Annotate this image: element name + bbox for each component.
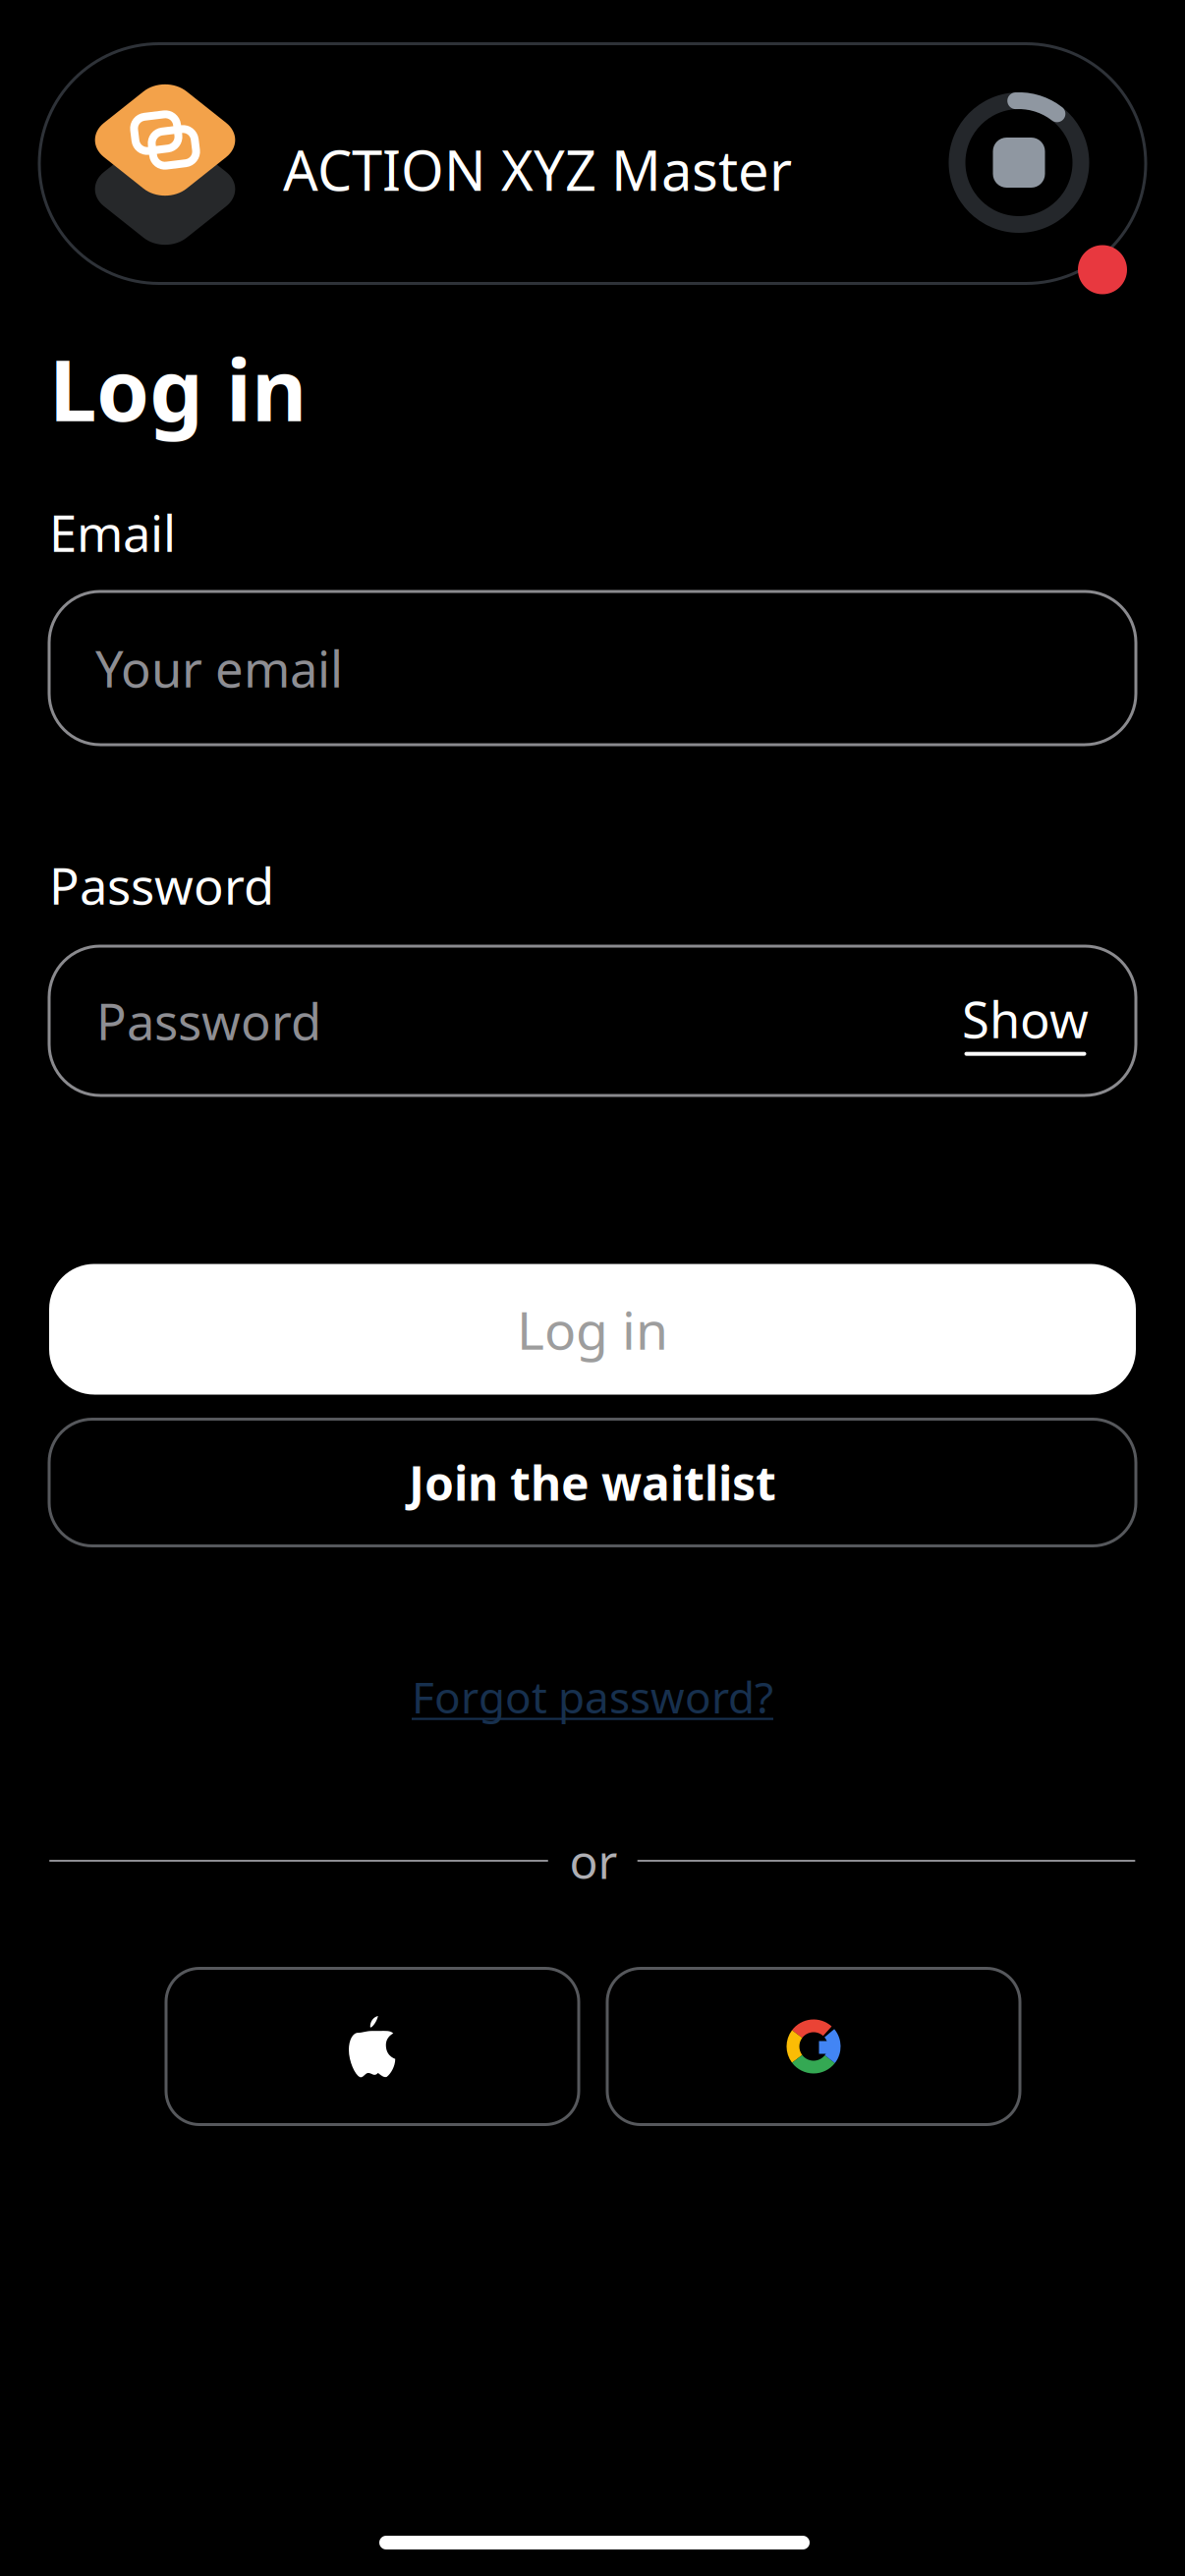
button[interactable]: Password, Show: [49, 946, 1136, 1095]
staticText: or: [569, 1829, 618, 1892]
button[interactable]: ACTION XYZ Master recording: [39, 44, 1146, 283]
staticText: ACTION XYZ Master: [283, 133, 792, 206]
staticText: Email: [49, 499, 176, 566]
staticText: Password: [96, 988, 321, 1054]
button[interactable]: Log in: [49, 1264, 1136, 1395]
button[interactable]: Your email: [49, 591, 1136, 745]
button[interactable]: Continue with Apple: [166, 1968, 579, 2125]
staticText: Log in: [517, 1294, 668, 1364]
staticText: Password: [49, 852, 274, 918]
staticText: Your email: [95, 635, 343, 701]
button[interactable]: Forgot password?: [288, 1661, 897, 1732]
staticText: Show: [962, 986, 1089, 1052]
button[interactable]: Join the waitlist: [49, 1419, 1136, 1546]
staticText: Join the waitlist: [409, 1451, 776, 1514]
staticText: Log in: [49, 332, 307, 445]
button[interactable]: Continue with Google: [607, 1968, 1020, 2125]
staticText: Forgot password?: [412, 1668, 773, 1725]
